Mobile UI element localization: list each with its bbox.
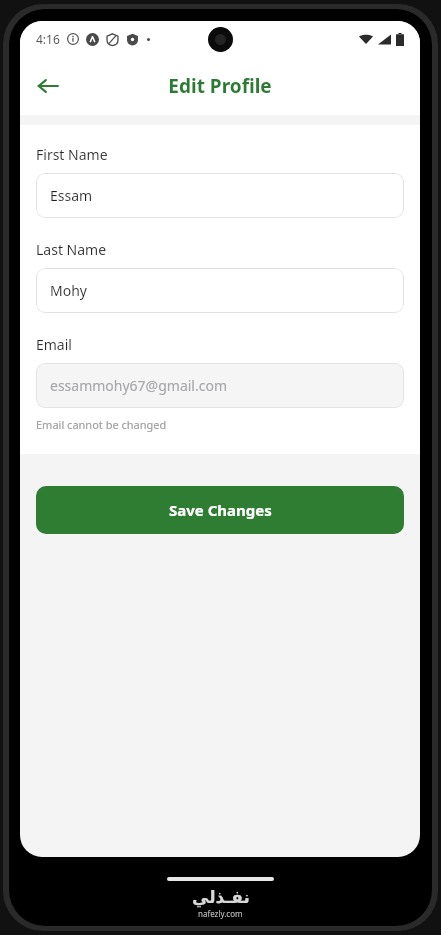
staticText: Edit Profile	[168, 73, 272, 99]
staticText: 4:16	[36, 31, 60, 47]
button[interactable]: essammohy67@gmail.com	[36, 363, 404, 408]
button[interactable]: Essam	[36, 173, 404, 218]
staticText: Email cannot be changed	[36, 417, 167, 432]
staticText: Mohy	[50, 281, 87, 300]
staticText: nafezly.com	[198, 908, 243, 919]
staticText: Essam	[50, 186, 93, 205]
staticText: Save Changes	[169, 500, 272, 520]
button[interactable]: Save Changes	[36, 486, 404, 534]
staticText: نفـذلي	[192, 887, 250, 907]
staticText: Email	[36, 335, 72, 354]
button[interactable]: Back	[26, 64, 70, 108]
staticText: Last Name	[36, 240, 107, 259]
staticText: First Name	[36, 145, 108, 164]
button[interactable]: Mohy	[36, 268, 404, 313]
staticText: essammohy67@gmail.com	[50, 376, 228, 395]
